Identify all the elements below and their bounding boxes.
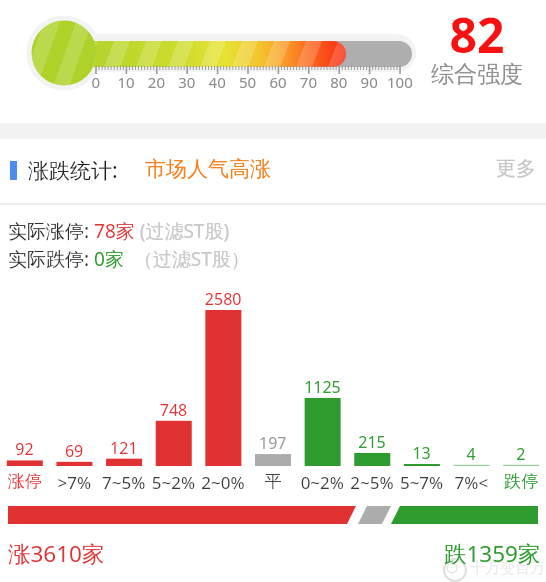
button[interactable] (480, 150, 540, 190)
